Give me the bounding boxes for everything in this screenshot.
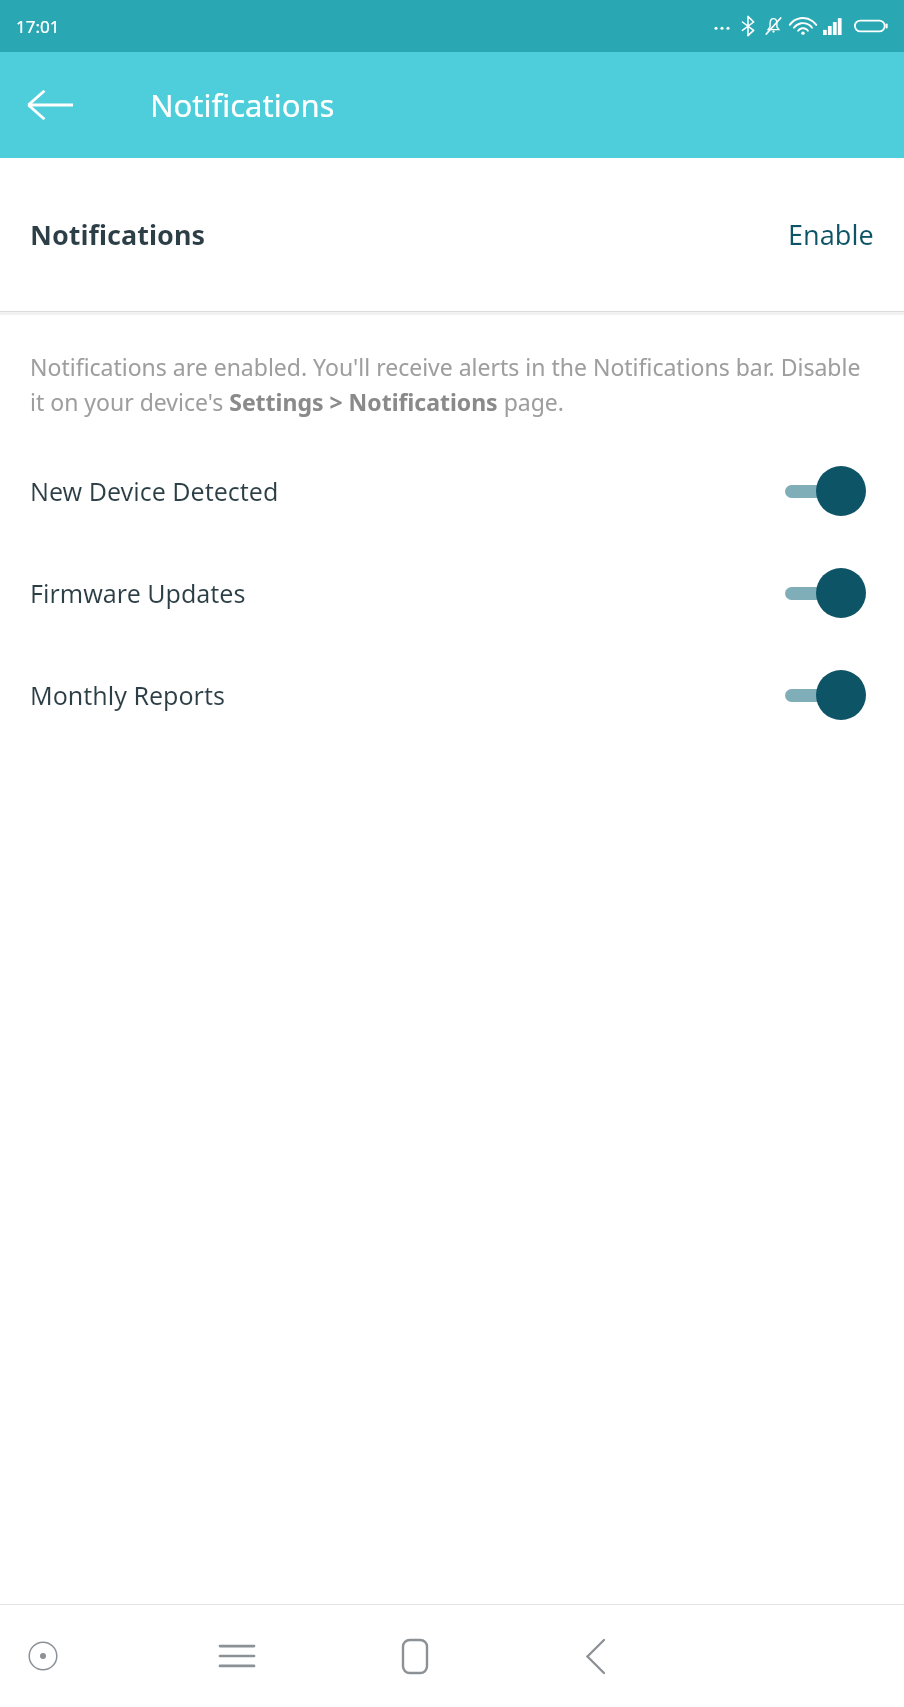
button[interactable]: New Device Detected (0, 440, 904, 542)
staticText: Monthly Reports (30, 678, 783, 712)
staticText: Notifications are enabled. You'll receiv… (30, 351, 874, 418)
button[interactable]: Home (386, 1627, 444, 1685)
staticText: Firmware Updates (30, 576, 783, 610)
staticText: New Device Detected (30, 474, 783, 508)
staticText: Enable (788, 216, 874, 253)
button[interactable]: Monthly Reports (0, 644, 904, 746)
staticText: Notifications (150, 84, 335, 126)
button[interactable]: Menu (208, 1627, 266, 1685)
button[interactable]: Back (566, 1627, 624, 1685)
button[interactable]: Firmware Updates (0, 542, 904, 644)
button[interactable]: Assistant (14, 1627, 72, 1685)
staticText: 17:01 (16, 15, 60, 38)
staticText: Notifications (30, 216, 788, 253)
button[interactable]: Notifications (0, 158, 904, 311)
button[interactable]: Back (22, 77, 78, 133)
